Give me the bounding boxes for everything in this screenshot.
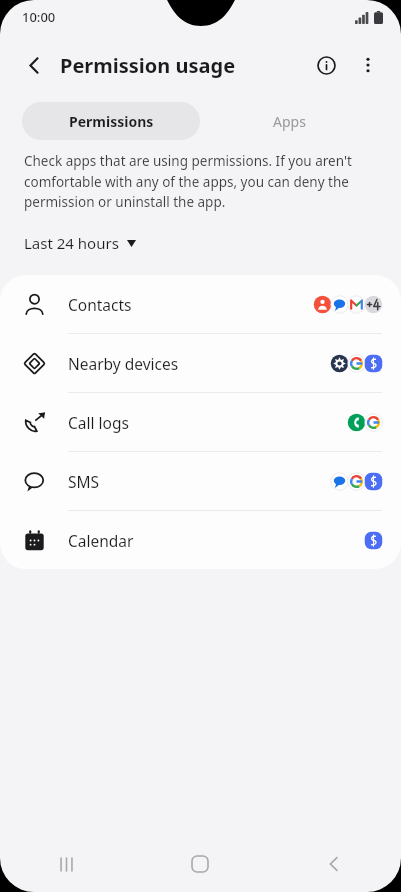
staticText: Nearby devices [68, 353, 179, 374]
staticText: Apps [273, 112, 306, 131]
button[interactable]: More options [347, 44, 389, 86]
button[interactable]: Calendar [0, 511, 401, 569]
button[interactable]: SMS [0, 452, 401, 511]
button[interactable]: Contacts [0, 275, 401, 334]
button[interactable]: Call logs [0, 393, 401, 452]
staticText: Calendar [68, 530, 134, 551]
button[interactable]: Home [133, 836, 267, 892]
staticText: 10:00 [22, 8, 56, 26]
staticText: Contacts [68, 294, 132, 315]
staticText: Check apps that are using permissions. I… [24, 152, 377, 211]
button[interactable]: Permissions [22, 102, 200, 140]
staticText: SMS [68, 471, 100, 492]
button[interactable]: Recent apps [0, 836, 133, 892]
button[interactable]: Back [14, 45, 54, 85]
button[interactable]: Back [267, 836, 401, 892]
button[interactable]: Apps [200, 102, 379, 140]
staticText: Call logs [68, 412, 129, 433]
button[interactable]: Information [305, 44, 347, 86]
button[interactable]: Nearby devices [0, 334, 401, 393]
staticText: Permissions [69, 112, 154, 131]
button[interactable]: Last 24 hours [20, 229, 140, 257]
staticText: Last 24 hours [24, 233, 119, 253]
staticText: Permission usage [60, 52, 236, 79]
